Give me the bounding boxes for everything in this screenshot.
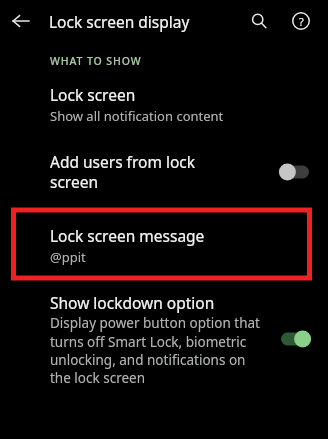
button[interactable]: Search <box>244 6 274 36</box>
staticText: Lock screen <box>50 84 136 105</box>
staticText: Lock screen message <box>50 225 205 246</box>
button[interactable]: Lock screen message <box>0 225 328 266</box>
button[interactable]: Toggle off <box>276 160 314 184</box>
staticText: WHAT TO SHOW <box>50 54 142 68</box>
staticText: ? <box>299 14 304 29</box>
staticText: Show all notification content <box>50 107 224 125</box>
button[interactable]: Show lockdown option <box>0 292 328 386</box>
button[interactable]: Add users from lock screen <box>0 151 328 192</box>
button[interactable]: Help <box>286 6 316 36</box>
staticText: Display power button option that turns o… <box>50 314 266 386</box>
staticText: Lock screen display <box>49 11 190 32</box>
staticText: @ppit <box>50 248 86 266</box>
staticText: Add users from lock screen <box>50 151 264 192</box>
button[interactable]: Back <box>6 6 36 36</box>
staticText: Show lockdown option <box>50 292 215 313</box>
button[interactable]: Lock screen <box>0 80 328 133</box>
button[interactable]: Toggle on <box>276 327 314 351</box>
